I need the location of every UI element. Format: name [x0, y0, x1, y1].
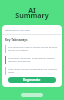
staticText: Generated 2 min ago: [5, 28, 30, 31]
staticText: The quarterly report shows strong growth…: [8, 45, 59, 51]
staticText: AI: [0, 6, 64, 16]
staticText: Regenerate: [23, 78, 41, 82]
staticText: Next steps include expanding the support…: [8, 67, 59, 73]
staticText: Key Takeaways: [5, 38, 28, 42]
staticText: Customer retention improved by twelve pe…: [8, 56, 59, 62]
staticText: Summary: [0, 11, 64, 21]
button[interactable]: [21, 93, 43, 97]
button[interactable]: Regenerate: [8, 77, 56, 83]
